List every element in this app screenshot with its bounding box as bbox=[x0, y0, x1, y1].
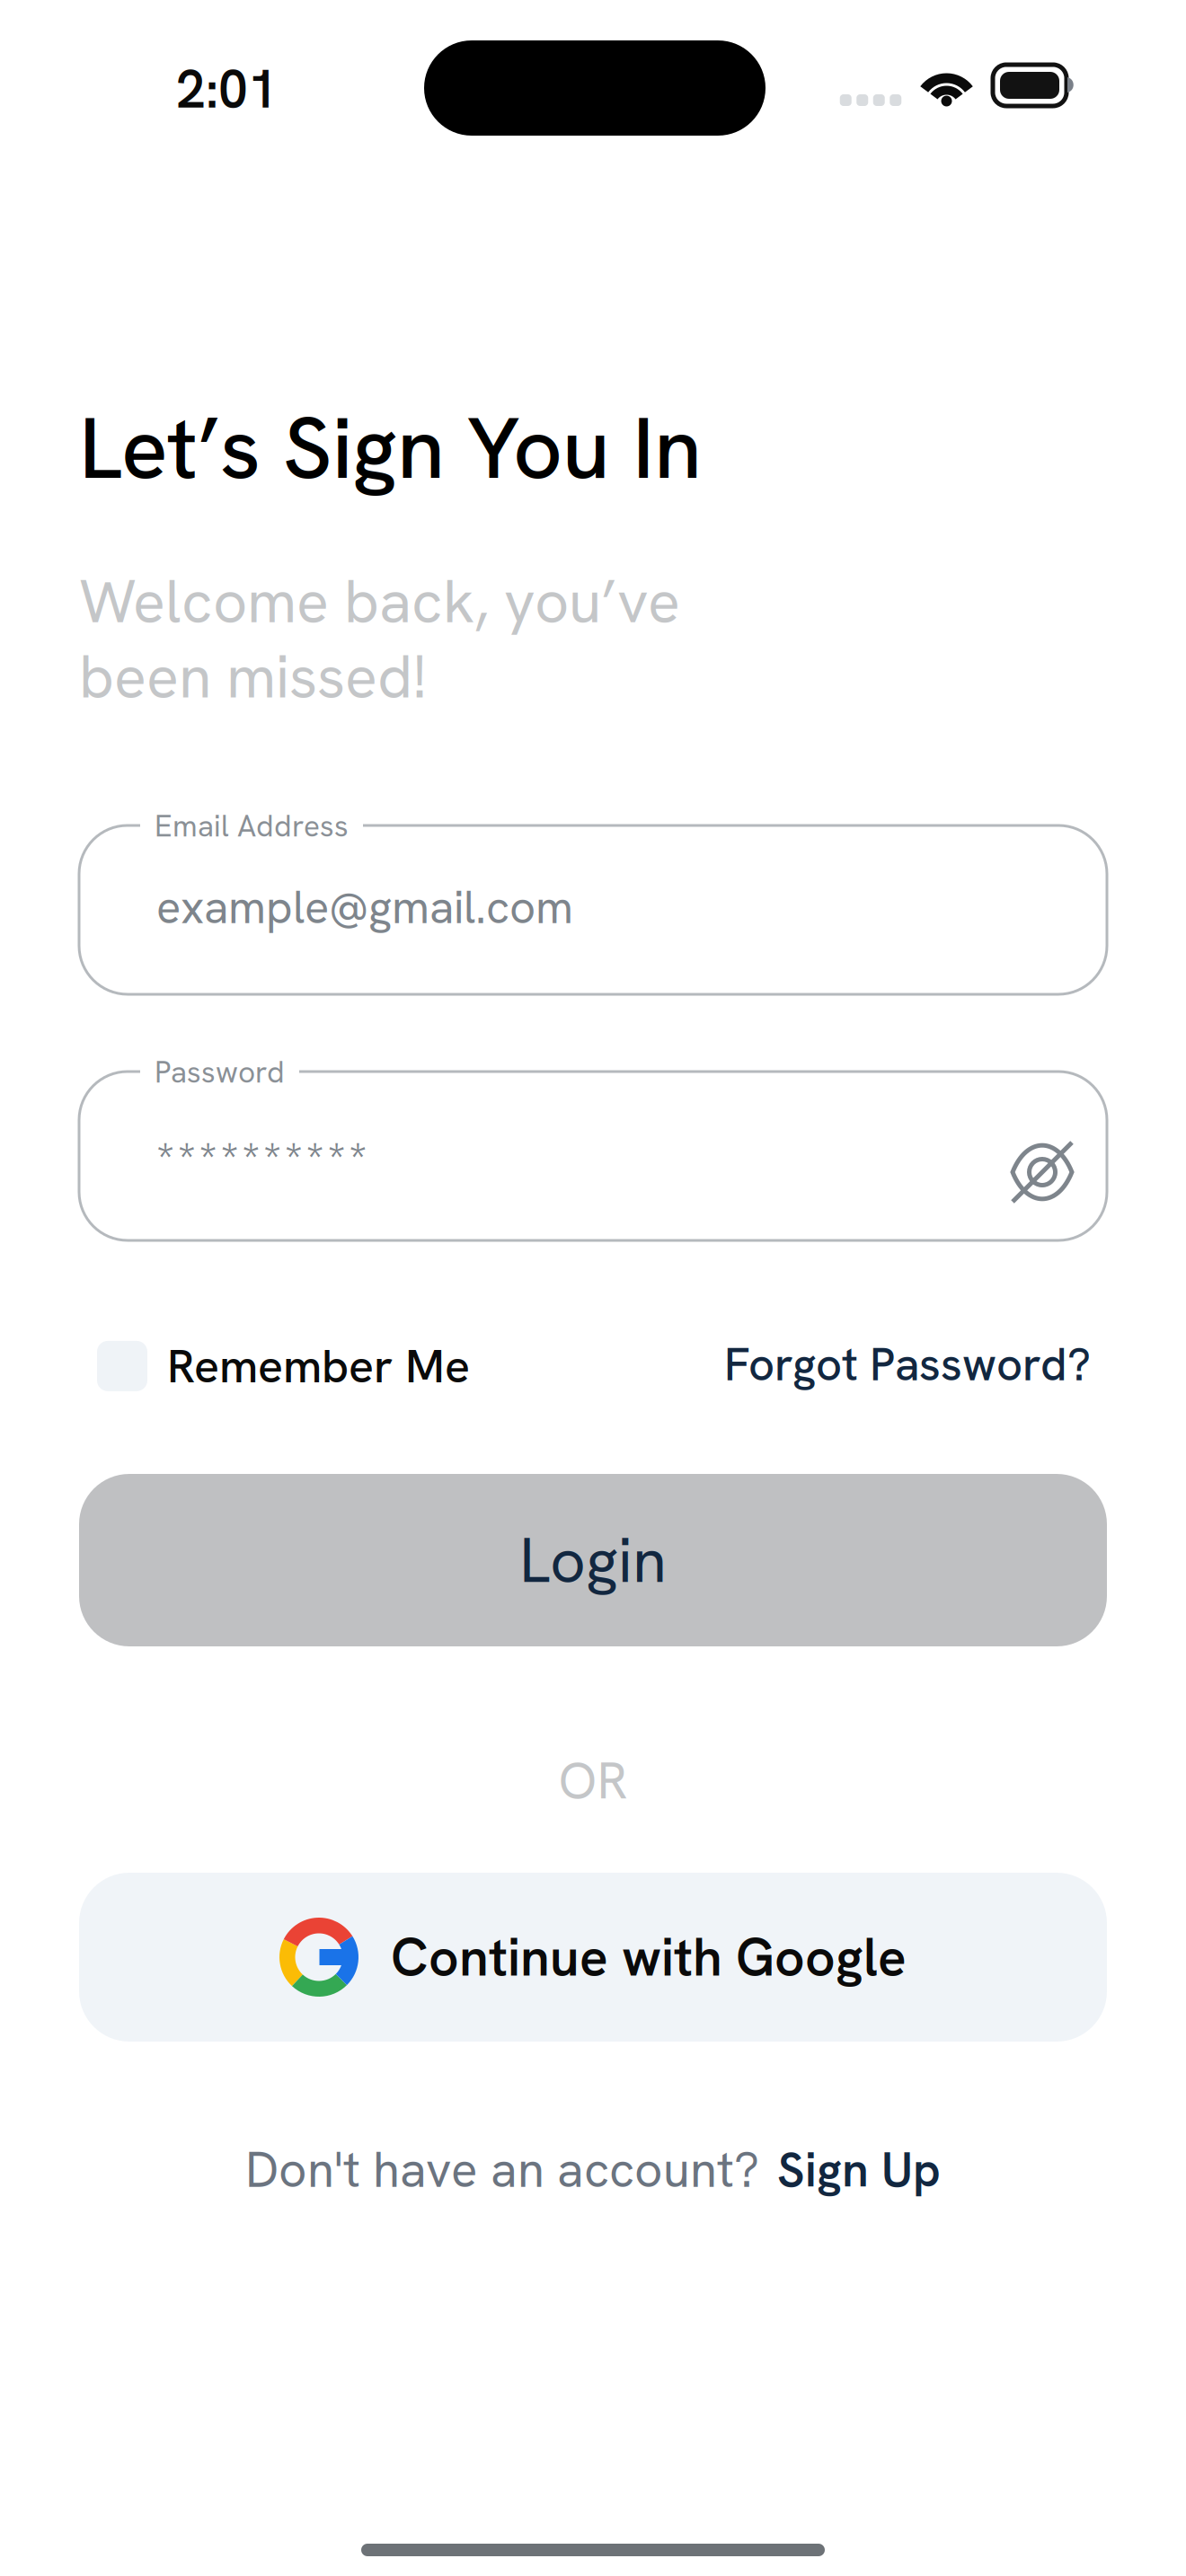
staticText: example@gmail.com bbox=[156, 878, 573, 937]
staticText: Let’s Sign You In bbox=[79, 392, 702, 504]
staticText: 2:01 bbox=[176, 55, 278, 123]
staticText: Don't have an account? bbox=[245, 2138, 759, 2202]
staticText: Login bbox=[519, 1520, 667, 1601]
staticText: Forgot Password? bbox=[724, 1335, 1091, 1394]
staticText: Welcome back, you’ve been missed! bbox=[79, 562, 680, 716]
staticText: OR bbox=[558, 1747, 628, 1814]
staticText: Remember Me bbox=[167, 1336, 470, 1397]
staticText: Sign Up bbox=[777, 2138, 941, 2201]
staticText: Password bbox=[155, 1053, 285, 1092]
button[interactable]: Remember Me bbox=[97, 1336, 470, 1397]
staticText: Email Address bbox=[155, 807, 349, 846]
button[interactable]: Continue with Google bbox=[79, 1873, 1107, 2042]
button[interactable]: Forgot Password? bbox=[724, 1335, 1091, 1394]
staticText: ********** bbox=[156, 1130, 367, 1189]
button[interactable]: Sign Up bbox=[777, 2138, 941, 2201]
staticText: Continue with Google bbox=[391, 1923, 907, 1991]
button[interactable]: Login bbox=[79, 1474, 1107, 1646]
